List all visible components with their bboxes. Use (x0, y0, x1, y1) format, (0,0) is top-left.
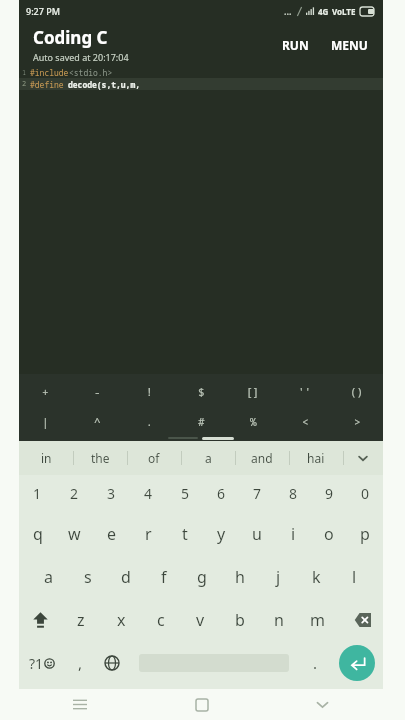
button[interactable]: t (167, 512, 203, 555)
button[interactable]: x (101, 598, 141, 641)
staticText: ! (146, 384, 153, 399)
button[interactable]: ! (123, 376, 175, 406)
button[interactable]: 2 (56, 475, 93, 512)
button[interactable]: a (29, 555, 68, 598)
button[interactable]: s (68, 555, 107, 598)
staticText: j (276, 566, 281, 588)
button[interactable]: u (239, 512, 275, 555)
button[interactable]: y (203, 512, 239, 555)
staticText: v (196, 609, 205, 631)
staticText: 6 (217, 484, 226, 503)
staticText: 1 (22, 68, 30, 78)
button[interactable]: of (127, 441, 181, 475)
button[interactable]: RUN (275, 32, 316, 58)
button[interactable]: () (331, 376, 383, 406)
staticText: Coding C (33, 26, 108, 49)
button[interactable]: p (347, 512, 383, 555)
button[interactable]: in (19, 441, 73, 475)
button[interactable]: n (259, 598, 298, 641)
staticText: hai (307, 450, 325, 466)
button[interactable]: j (259, 555, 297, 598)
button[interactable]: | (19, 406, 71, 436)
button[interactable]: 3 (93, 475, 130, 512)
staticText: . (146, 414, 153, 429)
staticText: q (33, 523, 43, 545)
button[interactable]: g (183, 555, 221, 598)
staticText: a (44, 566, 53, 588)
button[interactable]: , (65, 641, 95, 685)
button[interactable]: f (145, 555, 183, 598)
button[interactable]: v (181, 598, 220, 641)
button[interactable]: a (181, 441, 235, 475)
staticText: o (324, 523, 334, 545)
button[interactable]: e (93, 512, 130, 555)
staticText: < (302, 414, 309, 429)
button[interactable]: l (335, 555, 373, 598)
button[interactable]: w (56, 512, 93, 555)
button[interactable]: q (19, 512, 56, 555)
button[interactable]: Change language (95, 641, 129, 685)
staticText: i (291, 523, 296, 545)
staticText: d (121, 566, 131, 588)
button[interactable]: c (141, 598, 181, 641)
button[interactable]: 7 (239, 475, 275, 512)
button[interactable]: ?1 (19, 641, 65, 685)
button[interactable]: i (275, 512, 311, 555)
staticText: 8 (289, 484, 298, 503)
staticText: 0 (361, 484, 370, 503)
button[interactable]: 5 (167, 475, 203, 512)
staticText: s (84, 566, 92, 588)
button[interactable]: r (130, 512, 167, 555)
staticText: 4 (144, 484, 153, 503)
button[interactable]: Expand suggestions (343, 441, 383, 475)
button[interactable]: Back (262, 689, 383, 720)
button[interactable]: '' (279, 376, 331, 406)
button[interactable]: and (235, 441, 289, 475)
button[interactable]: > (331, 406, 383, 436)
button[interactable]: < (279, 406, 331, 436)
button[interactable]: 1 (19, 475, 56, 512)
button[interactable]: Shift (19, 598, 61, 641)
button[interactable]: Home (141, 689, 262, 720)
staticText: 5 (181, 484, 190, 503)
button[interactable]: ^ (71, 406, 123, 436)
staticText: 2 (70, 484, 79, 503)
button[interactable]: $ (175, 376, 227, 406)
button[interactable]: d (107, 555, 145, 598)
button[interactable]: % (227, 406, 279, 436)
staticText: 9:27 PM (26, 5, 60, 17)
staticText: - (94, 384, 101, 399)
button[interactable]: Enter (331, 641, 383, 685)
button[interactable]: Space (129, 641, 299, 685)
button[interactable]: . (299, 641, 331, 685)
staticText: g (197, 566, 207, 588)
button[interactable]: Recents (19, 689, 141, 720)
staticText: u (252, 523, 262, 545)
button[interactable]: h (221, 555, 259, 598)
button[interactable]: 0 (347, 475, 383, 512)
button[interactable]: + (19, 376, 71, 406)
button[interactable]: . (123, 406, 175, 436)
button[interactable]: 9 (311, 475, 347, 512)
button[interactable]: [] (227, 376, 279, 406)
button[interactable]: # (175, 406, 227, 436)
staticText: r (145, 523, 152, 545)
staticText: l (352, 566, 357, 588)
button[interactable]: 8 (275, 475, 311, 512)
button[interactable]: Backspace (337, 598, 383, 641)
button[interactable]: k (297, 555, 335, 598)
staticText: VoLTE (332, 6, 356, 17)
staticText: in (41, 450, 52, 466)
button[interactable]: 6 (203, 475, 239, 512)
button[interactable]: 4 (130, 475, 167, 512)
staticText: 1 (33, 484, 42, 503)
button[interactable]: hai (289, 441, 343, 475)
staticText: and (251, 450, 273, 466)
button[interactable]: MENU (324, 32, 375, 58)
button[interactable]: o (311, 512, 347, 555)
button[interactable]: - (71, 376, 123, 406)
button[interactable]: z (61, 598, 101, 641)
button[interactable]: m (298, 598, 337, 641)
button[interactable]: the (73, 441, 127, 475)
button[interactable]: b (220, 598, 259, 641)
